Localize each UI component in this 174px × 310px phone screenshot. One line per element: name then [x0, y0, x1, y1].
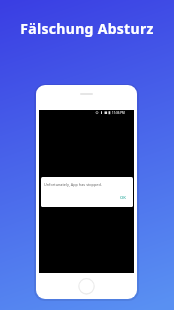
staticText: 11:36 PM — [112, 111, 125, 115]
button[interactable]: Unfortunately, App has stopped. — [41, 177, 133, 207]
button[interactable]: OK — [120, 195, 126, 201]
staticText: Unfortunately, App has stopped. — [44, 182, 102, 187]
staticText: Fälschung Absturz — [0, 19, 174, 38]
